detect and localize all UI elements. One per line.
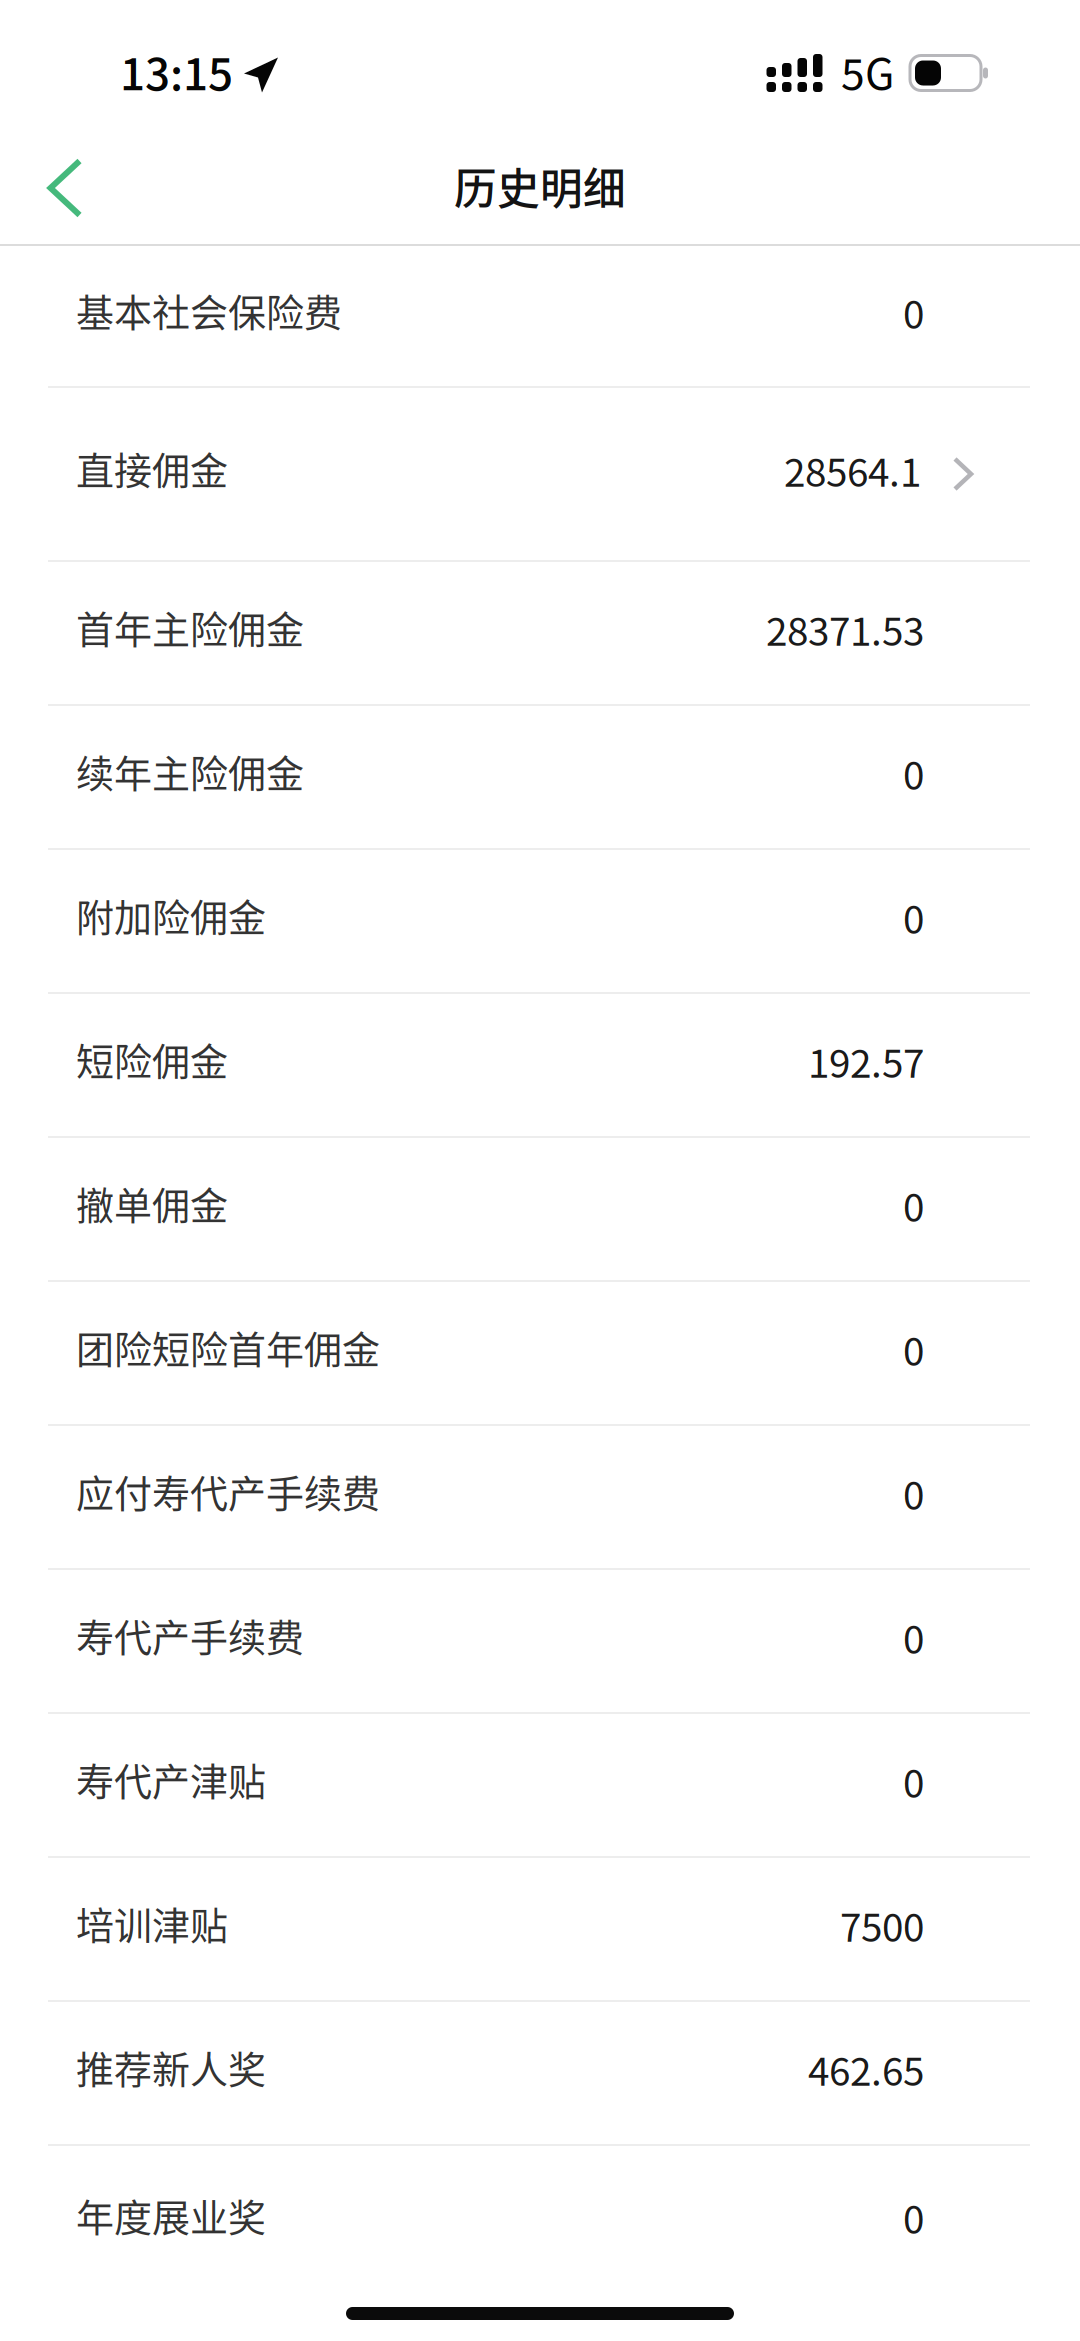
- staticText: 首年主险佣金: [76, 599, 304, 654]
- staticText: 寿代产手续费: [76, 1607, 304, 1662]
- staticText: 推荐新人奖: [76, 2039, 266, 2094]
- staticText: 0: [903, 2189, 924, 2245]
- button[interactable]: 寿代产手续费: [0, 1570, 1080, 1712]
- staticText: 直接佣金: [76, 440, 228, 495]
- staticText: 0: [903, 1321, 924, 1377]
- staticText: 附加险佣金: [76, 887, 266, 942]
- button[interactable]: 培训津贴: [0, 1858, 1080, 2000]
- button[interactable]: 首年主险佣金: [0, 562, 1080, 704]
- button[interactable]: 返回: [0, 146, 126, 246]
- staticText: 年度展业奖: [76, 2187, 266, 2242]
- staticText: 培训津贴: [76, 1895, 228, 1950]
- staticText: 192.57: [808, 1033, 924, 1089]
- staticText: 0: [903, 1753, 924, 1809]
- staticText: 基本社会保险费: [76, 282, 342, 337]
- staticText: 13:15: [120, 39, 233, 103]
- staticText: 0: [903, 1465, 924, 1521]
- staticText: 寿代产津贴: [76, 1751, 266, 1806]
- button[interactable]: 应付寿代产手续费: [0, 1426, 1080, 1568]
- button[interactable]: 年度展业奖: [0, 2146, 1080, 2296]
- staticText: 0: [903, 284, 924, 340]
- staticText: 应付寿代产手续费: [76, 1463, 380, 1518]
- staticText: 0: [903, 889, 924, 945]
- button[interactable]: 基本社会保险费: [0, 246, 1080, 386]
- button[interactable]: 撤单佣金: [0, 1138, 1080, 1280]
- button[interactable]: 寿代产津贴: [0, 1714, 1080, 1856]
- button[interactable]: 短险佣金: [0, 994, 1080, 1136]
- staticText: 0: [903, 1609, 924, 1665]
- staticText: 团险短险首年佣金: [76, 1319, 380, 1374]
- button[interactable]: 推荐新人奖: [0, 2002, 1080, 2144]
- staticText: 0: [903, 745, 924, 801]
- staticText: 历史明细: [454, 155, 626, 217]
- button[interactable]: 续年主险佣金: [0, 706, 1080, 848]
- staticText: 短险佣金: [76, 1031, 228, 1086]
- staticText: 462.65: [808, 2041, 924, 2097]
- staticText: 续年主险佣金: [76, 743, 304, 798]
- button[interactable]: 直接佣金: [0, 388, 1080, 560]
- staticText: 28371.53: [766, 601, 924, 657]
- staticText: 0: [903, 1177, 924, 1233]
- button[interactable]: 附加险佣金: [0, 850, 1080, 992]
- staticText: 7500: [840, 1897, 924, 1953]
- staticText: 5G: [841, 40, 894, 102]
- button[interactable]: 团险短险首年佣金: [0, 1282, 1080, 1424]
- staticText: 28564.1: [784, 442, 921, 498]
- staticText: 撤单佣金: [76, 1175, 228, 1230]
